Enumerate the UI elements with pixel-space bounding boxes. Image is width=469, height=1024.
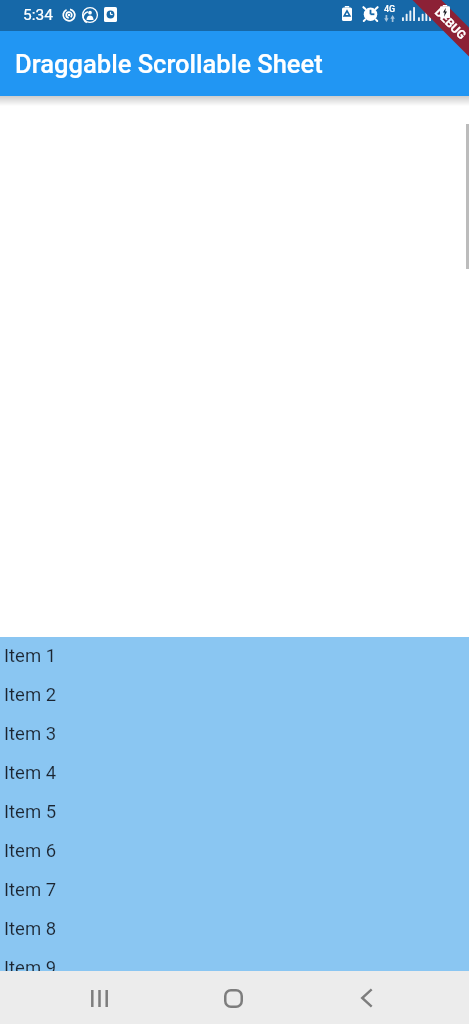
staticText: Item 3 xyxy=(4,723,57,745)
staticText: Item 4 xyxy=(4,762,57,784)
button[interactable]: Item 2 xyxy=(0,676,469,715)
button[interactable]: Item 3 xyxy=(0,715,469,754)
staticText: 5:34 xyxy=(23,6,53,24)
staticText: Item 9 xyxy=(4,957,57,971)
staticText: Item 1 xyxy=(4,645,57,667)
staticText: 4G xyxy=(384,4,396,15)
staticText: Item 6 xyxy=(4,840,57,862)
staticText: Item 5 xyxy=(4,801,57,823)
button[interactable]: Draggable Scrollable Sheet xyxy=(0,31,469,96)
staticText: Item 2 xyxy=(4,684,57,706)
staticText: Item 7 xyxy=(4,879,57,901)
button[interactable]: Item 8 xyxy=(0,910,469,949)
button[interactable]: Item 4 xyxy=(0,754,469,793)
button[interactable]: Item 1 xyxy=(0,637,469,676)
button[interactable]: Back xyxy=(342,974,390,1022)
button[interactable]: Item 5 xyxy=(0,793,469,832)
button[interactable]: Item 9 xyxy=(0,949,469,971)
button[interactable]: Item 6 xyxy=(0,832,469,871)
button[interactable]: Item 7 xyxy=(0,871,469,910)
staticText: DEBUG xyxy=(432,5,469,43)
button[interactable]: Recent apps xyxy=(75,974,123,1022)
staticText: Draggable Scrollable Sheet xyxy=(15,49,323,79)
staticText: Item 8 xyxy=(4,918,57,940)
button[interactable]: Home xyxy=(209,974,257,1022)
